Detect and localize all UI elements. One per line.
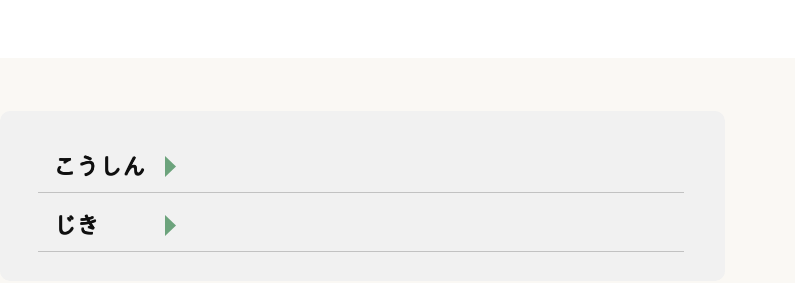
- staticText: じき: [54, 213, 100, 236]
- staticText: こうしん: [54, 154, 146, 177]
- button[interactable]: じき: [0, 193, 725, 252]
- staticText: じき: [54, 214, 100, 237]
- staticText: こうしん: [53, 155, 145, 178]
- staticText: こうしん: [54, 154, 146, 177]
- staticText: こうしん: [53, 154, 145, 177]
- button[interactable]: Open こうしん: [165, 156, 176, 177]
- button[interactable]: こうしん: [0, 134, 725, 193]
- staticText: こうしん: [54, 154, 146, 177]
- button[interactable]: Open じき: [165, 215, 176, 236]
- staticText: じき: [53, 214, 99, 237]
- staticText: じき: [54, 213, 100, 236]
- staticText: こうしん: [54, 155, 146, 178]
- staticText: じき: [53, 213, 99, 236]
- staticText: じき: [54, 213, 100, 236]
